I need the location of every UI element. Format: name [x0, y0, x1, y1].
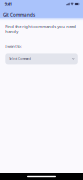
- staticText: Select Command: [9, 57, 31, 61]
- staticText: handy: [5, 29, 18, 34]
- staticText: 9:41: [5, 1, 12, 7]
- staticText: I want to:: [5, 43, 22, 49]
- button[interactable]: Select Command: [5, 53, 78, 64]
- staticText: Find the right commands you need: [5, 23, 76, 29]
- staticText: Git Commands: [3, 12, 35, 18]
